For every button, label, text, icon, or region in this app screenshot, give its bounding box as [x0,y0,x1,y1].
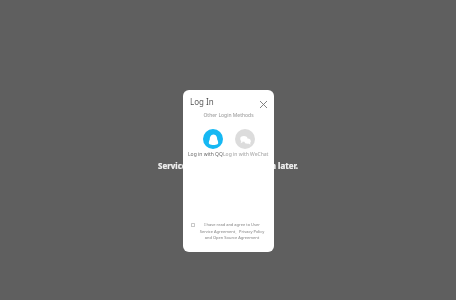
button[interactable]: Log In [188,95,216,108]
button[interactable]: Agree to terms [191,223,195,227]
staticText: Log In [190,96,214,107]
staticText: I have read and agree to User Service Ag… [197,222,267,240]
button[interactable]: Log in with WeChat [223,151,269,158]
staticText: Service error, please try again later. [158,160,298,171]
button[interactable]: Log in with WeChat [235,129,255,149]
staticText: Other Login Methods [203,112,254,119]
button[interactable]: Log in with QQ [203,129,223,149]
button[interactable]: Close [256,97,270,111]
button[interactable]: I have read and agree to User Service Ag… [197,222,267,240]
button[interactable]: Log in with QQ [188,151,223,158]
